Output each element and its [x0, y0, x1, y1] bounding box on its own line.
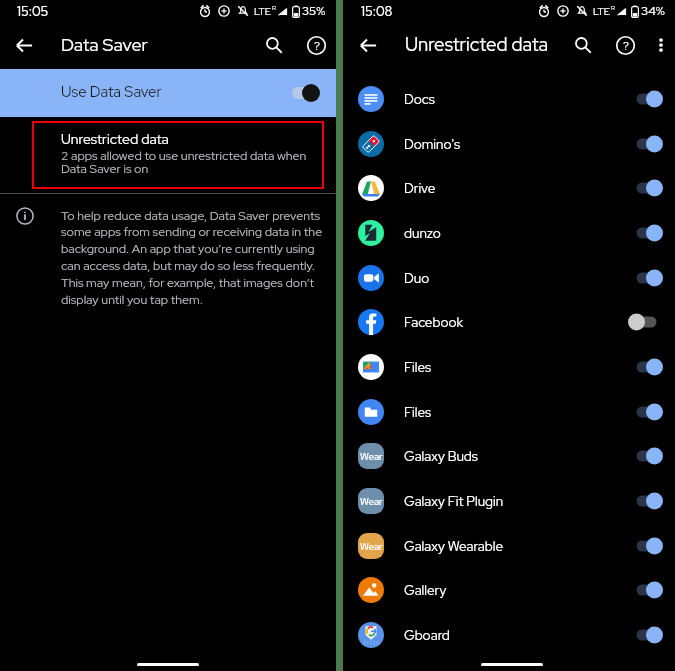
staticText: Data Saver [61, 33, 148, 57]
staticText: Docs [404, 90, 435, 108]
staticText: Wear [360, 540, 383, 553]
staticText: To help reduce data usage, Data Saver pr… [61, 207, 323, 307]
staticText: 34% [641, 3, 665, 19]
staticText: 2 apps allowed to use unrestricted data … [61, 147, 307, 177]
staticText: 15:05 [17, 3, 49, 20]
staticText: Use Data Saver [61, 82, 162, 102]
staticText: Wear [360, 495, 383, 508]
button[interactable]: Navigate up [354, 31, 382, 59]
button[interactable]: Search [260, 31, 288, 59]
staticText: Facebook [404, 313, 464, 331]
staticText: LTE [593, 5, 610, 18]
button[interactable]: Files [343, 389, 675, 434]
staticText: LTE [254, 5, 271, 18]
staticText: Drive [404, 179, 436, 197]
button[interactable]: Wear [343, 433, 675, 478]
staticText: Gboard [404, 626, 450, 644]
staticText: Duo [404, 269, 430, 287]
staticText: Unrestricted data [61, 130, 169, 149]
staticText: Galaxy Wearable [404, 537, 504, 555]
staticText: 15:08 [361, 3, 393, 20]
button[interactable]: Unrestricted data [0, 117, 336, 193]
staticText: Gallery [404, 581, 447, 599]
button[interactable]: Use Data Saver [0, 69, 336, 117]
button[interactable]: Gboard [343, 612, 675, 657]
button[interactable]: Drive [343, 165, 675, 210]
staticText: R [272, 4, 276, 12]
button[interactable]: Files [343, 344, 675, 389]
button[interactable]: Help [302, 31, 330, 59]
staticText: Domino's [404, 135, 461, 153]
button[interactable]: Domino's [343, 121, 675, 166]
staticText: R [611, 4, 615, 12]
staticText: ? [314, 38, 320, 54]
button[interactable]: Docs [343, 76, 675, 121]
button[interactable]: Wear [343, 478, 675, 523]
staticText: Galaxy Buds [404, 447, 478, 465]
button[interactable]: More options [648, 32, 674, 58]
button[interactable]: Wear [343, 523, 675, 568]
button[interactable]: Help [611, 31, 639, 59]
button[interactable]: Facebook [343, 299, 675, 344]
staticText: 35% [302, 3, 326, 19]
staticText: Wear [360, 450, 383, 463]
button[interactable]: Navigate up [10, 31, 38, 59]
button[interactable]: dunzo [343, 210, 675, 255]
staticText: Galaxy Fit Plugin [404, 492, 504, 510]
staticText: dunzo [404, 224, 441, 242]
staticText: Unrestricted data [405, 32, 549, 57]
button[interactable]: Search [569, 31, 597, 59]
staticText: ? [623, 38, 629, 54]
staticText: Files [404, 358, 432, 376]
button[interactable]: Gallery [343, 567, 675, 612]
staticText: Files [404, 403, 432, 421]
button[interactable]: Duo [343, 255, 675, 300]
